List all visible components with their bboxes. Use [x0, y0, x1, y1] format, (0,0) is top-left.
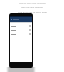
staticText: how to sync your calendar: [19, 2, 46, 5]
button[interactable]: Back: [10, 17, 32, 22]
staticText: with the app settings: [21, 6, 43, 9]
button[interactable]: [10, 32, 32, 36]
staticText: tap account to sync now: [18, 10, 47, 13]
button[interactable]: [10, 24, 32, 28]
button[interactable]: [10, 28, 32, 32]
